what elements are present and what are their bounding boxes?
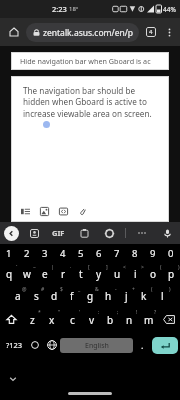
- staticText: (: [160, 264, 162, 271]
- staticText: t: [79, 267, 83, 281]
- button[interactable]: h: [99, 285, 117, 307]
- button[interactable]: w: [18, 263, 36, 285]
- button[interactable]: Emoji: [26, 332, 43, 358]
- staticText: y: [96, 267, 102, 281]
- button[interactable]: More options: [160, 23, 178, 41]
- staticText: _: [78, 286, 81, 293]
- staticText: (: [151, 286, 153, 293]
- staticText: 4: [60, 247, 66, 260]
- button[interactable]: y: [90, 263, 108, 285]
- staticText: :: [98, 309, 100, 316]
- staticText: 44%: [163, 5, 176, 14]
- staticText: !: [136, 309, 138, 316]
- button[interactable]: Clipboard: [77, 226, 91, 240]
- button[interactable]: c: [62, 307, 82, 332]
- staticText: ·: [70, 264, 72, 271]
- button[interactable]: The navigation bar should be hidden when…: [11, 76, 169, 222]
- button[interactable]: 7: [108, 244, 126, 263]
- button[interactable]: o: [144, 263, 162, 285]
- button[interactable]: zentalk.asus.com/en/p: [26, 23, 139, 42]
- staticText: z: [30, 313, 35, 327]
- staticText: 9: [150, 247, 156, 260]
- staticText: English: [85, 341, 109, 351]
- button[interactable]: English: [60, 338, 133, 353]
- staticText: 6: [96, 247, 102, 260]
- staticText: r: [61, 267, 66, 281]
- button[interactable]: Home: [4, 22, 24, 42]
- staticText: Hide navigation bar when Gboard is ac: [20, 56, 151, 66]
- button[interactable]: g: [81, 285, 99, 307]
- button[interactable]: p: [162, 263, 180, 285]
- button[interactable]: Insert image: [39, 206, 50, 217]
- button[interactable]: 2: [18, 244, 36, 263]
- button[interactable]: More: [135, 226, 149, 240]
- button[interactable]: v: [82, 307, 101, 332]
- staticText: l: [161, 289, 164, 303]
- button[interactable]: 9: [144, 244, 162, 263]
- button[interactable]: 3: [36, 244, 54, 263]
- staticText: 7: [114, 247, 120, 260]
- button[interactable]: s: [27, 285, 45, 307]
- button[interactable]: i: [126, 263, 144, 285]
- button[interactable]: t: [72, 263, 90, 285]
- staticText: [: [88, 264, 90, 271]
- staticText: @: [22, 286, 27, 293]
- button[interactable]: 8: [126, 244, 144, 263]
- staticText: i: [134, 267, 137, 281]
- staticText: u: [114, 267, 121, 281]
- staticText: <: [123, 264, 126, 271]
- button[interactable]: b: [101, 307, 120, 332]
- button[interactable]: n: [120, 307, 139, 332]
- button[interactable]: 0: [162, 244, 180, 263]
- button[interactable]: 6: [90, 244, 108, 263]
- button[interactable]: Enter: [152, 337, 178, 354]
- staticText: 8: [132, 247, 138, 260]
- button[interactable]: Tabs: [142, 23, 160, 41]
- button[interactable]: ?123: [2, 332, 26, 358]
- button[interactable]: Shift: [0, 307, 22, 332]
- button[interactable]: k: [135, 285, 153, 307]
- staticText: 2:23: [52, 4, 67, 14]
- button[interactable]: Text format: [20, 206, 31, 217]
- button[interactable]: q: [0, 263, 18, 285]
- button[interactable]: m: [139, 307, 158, 332]
- button[interactable]: Insert code: [58, 206, 69, 217]
- button[interactable]: Attach file: [77, 206, 88, 217]
- button[interactable]: Change language: [43, 332, 60, 358]
- button[interactable]: .: [133, 332, 152, 358]
- staticText: n: [126, 313, 133, 327]
- button[interactable]: Settings: [102, 226, 116, 240]
- button[interactable]: 5: [72, 244, 90, 263]
- staticText: GIF: [52, 228, 65, 238]
- button[interactable]: z: [22, 307, 42, 332]
- button[interactable]: l: [153, 285, 171, 307]
- button[interactable]: f: [63, 285, 81, 307]
- staticText: $: [60, 286, 63, 293]
- button[interactable]: u: [108, 263, 126, 285]
- button[interactable]: Hide navigation bar when Gboard is ac: [11, 52, 169, 70]
- button[interactable]: Backspace: [158, 307, 180, 332]
- button[interactable]: r: [54, 263, 72, 285]
- button[interactable]: Voice input: [159, 225, 175, 241]
- button[interactable]: a: [9, 285, 27, 307]
- staticText: ;: [117, 309, 119, 316]
- button[interactable]: Hide keyboard: [5, 371, 21, 387]
- button[interactable]: 1: [0, 244, 18, 263]
- button[interactable]: x: [42, 307, 62, 332]
- staticText: |: [51, 264, 54, 271]
- button[interactable]: Back: [4, 226, 19, 241]
- staticText: ': [79, 309, 81, 316]
- button[interactable]: e: [36, 263, 54, 285]
- button[interactable]: j: [117, 285, 135, 307]
- button[interactable]: GIF: [51, 227, 66, 239]
- staticText: q: [6, 267, 13, 281]
- staticText: g: [87, 289, 94, 303]
- staticText: c: [70, 313, 75, 327]
- button[interactable]: d: [45, 285, 63, 307]
- staticText: ]: [106, 264, 108, 271]
- staticText: .: [141, 339, 144, 351]
- staticText: ): [169, 286, 171, 293]
- button[interactable]: Stickers: [27, 226, 41, 240]
- button[interactable]: 4: [54, 244, 72, 263]
- staticText: 18°: [69, 5, 79, 13]
